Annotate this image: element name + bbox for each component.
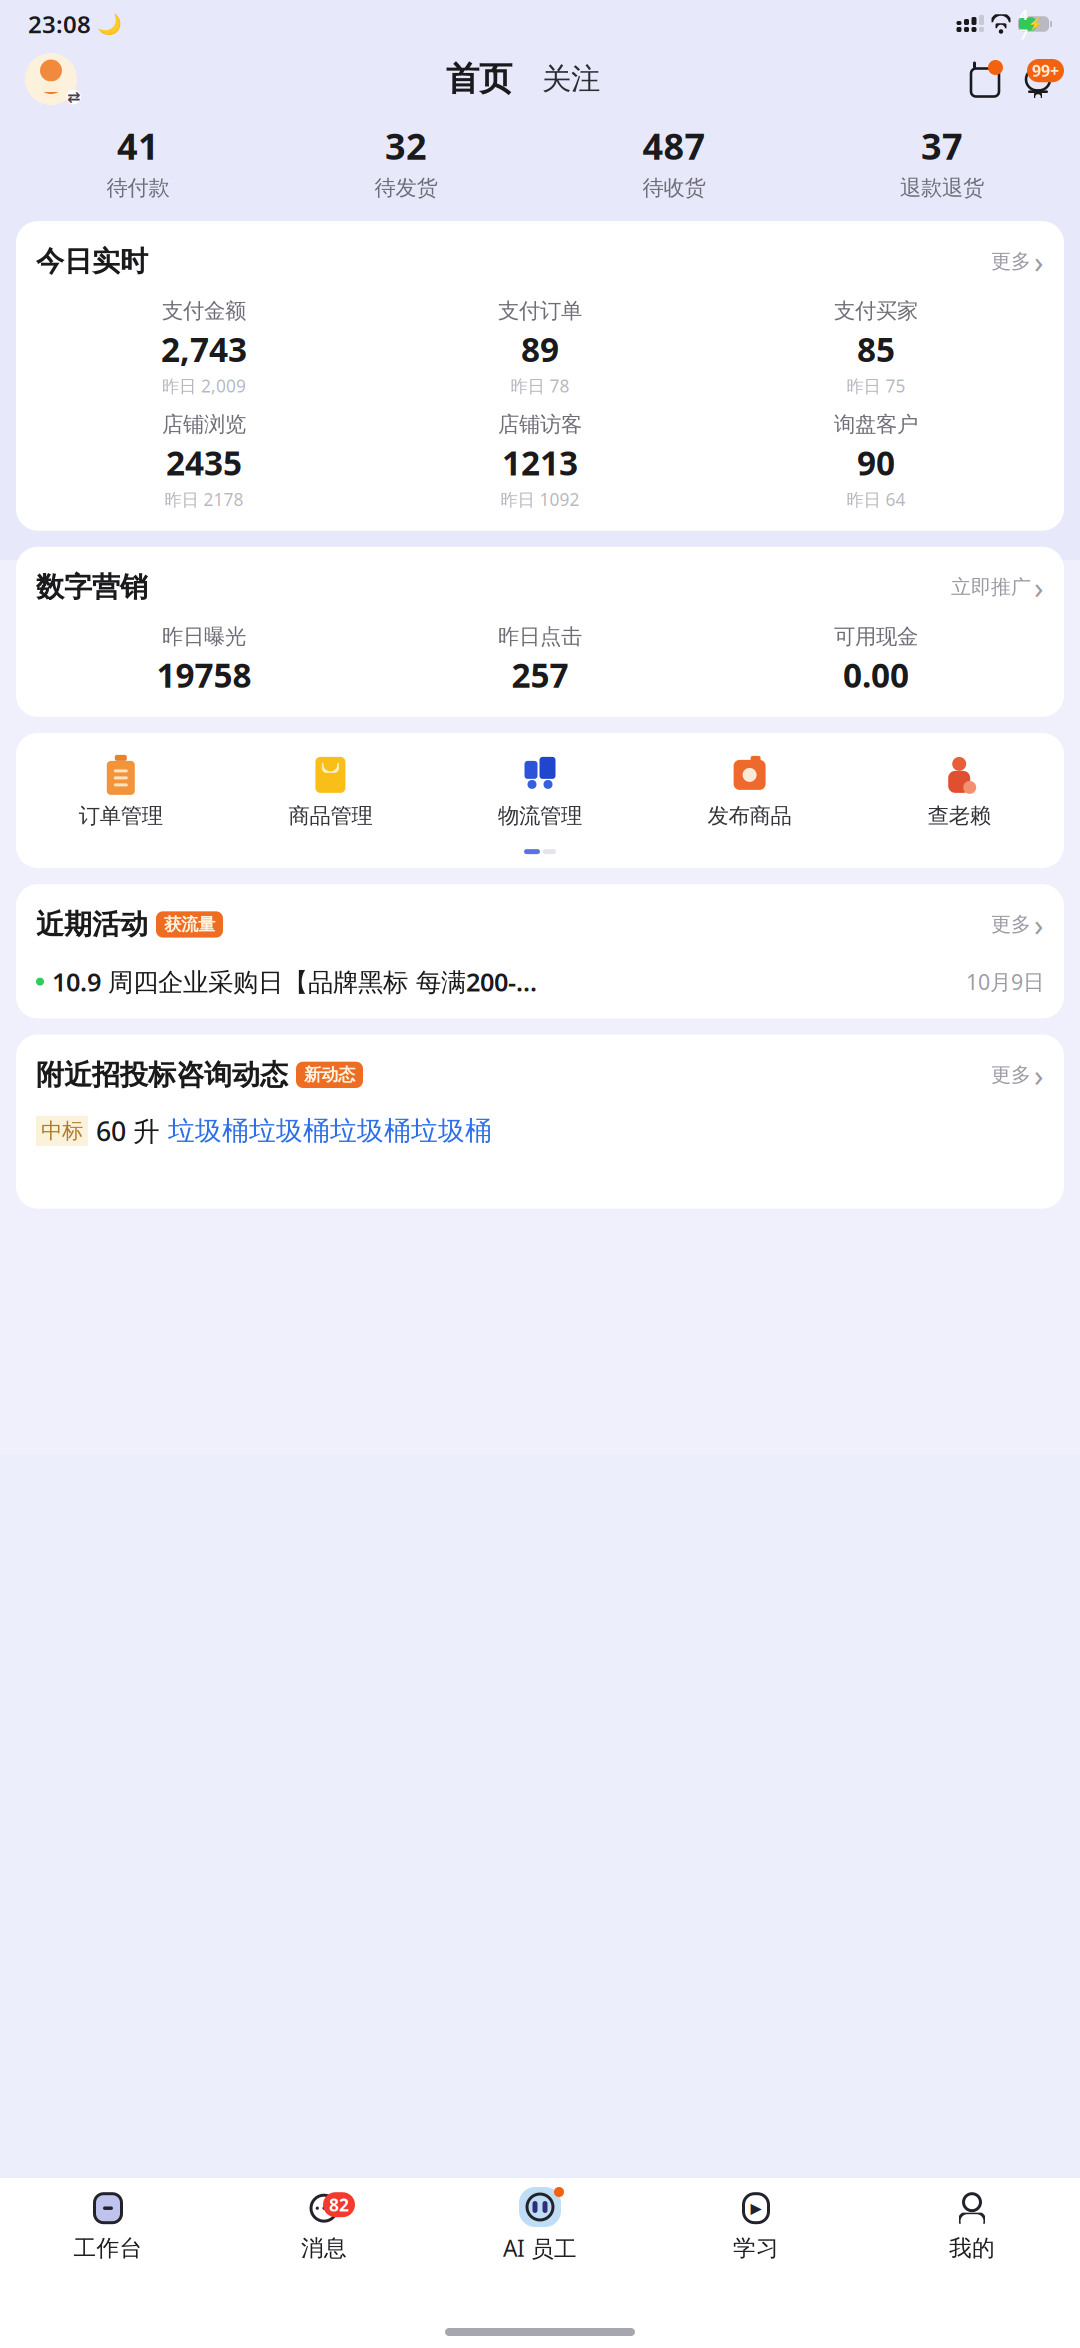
staticText: 关注 (542, 61, 600, 97)
staticText: 19758 (156, 653, 251, 697)
staticText: 10.9 周四企业采购日【品牌黑标 每满200-... (52, 965, 537, 998)
button[interactable]: 中标 (36, 1095, 1044, 1149)
staticText: 店铺访客 (498, 411, 582, 437)
staticText: 89 (521, 327, 559, 371)
staticText: 0.00 (843, 653, 909, 697)
staticText: 昨日 64 (846, 488, 905, 511)
staticText: 数字营销 (36, 570, 148, 604)
staticText: 2435 (166, 440, 242, 485)
button[interactable]: 我的 (864, 2179, 1080, 2262)
staticText: 2,743 (161, 327, 247, 371)
staticText: ▶ (750, 2200, 761, 2216)
button[interactable]: 立即推广 (951, 567, 1044, 607)
staticText: 37 (921, 122, 963, 170)
staticText: 昨日 75 (846, 374, 905, 397)
staticText: › (1034, 904, 1044, 945)
staticText: ⇄ (67, 88, 80, 106)
button[interactable]: 查老赖 (854, 755, 1064, 829)
staticText: 今日实时 (36, 244, 148, 279)
staticText: 85 (857, 327, 895, 371)
button[interactable]: Notifications (1004, 59, 1058, 99)
staticText: 近期活动 (36, 907, 148, 942)
button[interactable]: AI 员工 (432, 2178, 648, 2263)
staticText: 60 升 (96, 1113, 160, 1149)
button[interactable]: Calendar (966, 59, 1004, 99)
staticText: 32 (385, 122, 427, 170)
button[interactable]: 发布商品 (645, 755, 854, 829)
button[interactable]: 更多 (991, 904, 1044, 945)
staticText: 更多 (991, 1062, 1031, 1087)
button[interactable]: 商品管理 (226, 755, 435, 829)
staticText: ⚡ (1027, 17, 1042, 31)
staticText: 新动态 (304, 1064, 355, 1085)
staticText: 90 (857, 440, 895, 485)
staticText: 询盘客户 (834, 411, 918, 437)
button[interactable]: 关注 (512, 61, 600, 97)
staticText: › (1034, 241, 1044, 282)
button[interactable]: 更多 (991, 241, 1044, 282)
staticText: 我的 (949, 2234, 995, 2262)
button[interactable]: 首页 (446, 58, 512, 99)
staticText: 待付款 (106, 175, 169, 201)
staticText: 更多 (991, 249, 1031, 274)
staticText: 昨日点击 (498, 623, 582, 650)
staticText: 昨日 2,009 (162, 374, 246, 397)
staticText: 昨日 2178 (164, 488, 243, 511)
staticText: 47 (1019, 4, 1027, 43)
staticText: 支付金额 (162, 298, 246, 324)
button[interactable]: 更多 (991, 1054, 1044, 1095)
button[interactable]: 82 (216, 2179, 432, 2262)
staticText: AI 员工 (503, 2233, 577, 2263)
staticText: 学习 (733, 2234, 779, 2262)
staticText: 待发货 (374, 175, 437, 201)
staticText: 昨日 1092 (500, 488, 579, 511)
staticText: 查老赖 (928, 803, 991, 829)
staticText: 23:08 (28, 8, 91, 40)
staticText: 1213 (502, 440, 578, 485)
staticText: 待收货 (642, 175, 705, 201)
staticText: 发布商品 (708, 803, 792, 829)
staticText: 中标 (41, 1118, 83, 1144)
staticText: 获流量 (164, 914, 215, 935)
staticText: 支付订单 (498, 298, 582, 324)
button[interactable]: 32 (272, 116, 540, 207)
staticText: 商品管理 (288, 803, 372, 829)
staticText: 昨日曝光 (162, 623, 246, 650)
staticText: › (1034, 1054, 1044, 1095)
staticText: 首页 (446, 58, 512, 99)
staticText: 店铺浏览 (162, 411, 246, 437)
staticText: 更多 (991, 912, 1031, 937)
button[interactable]: 订单管理 (16, 755, 226, 829)
staticText: 工作台 (73, 2234, 142, 2262)
staticText: 可用现金 (834, 623, 918, 650)
staticText: 99+ (1032, 60, 1059, 81)
staticText: 10月9日 (966, 967, 1044, 996)
staticText: 消息 (301, 2234, 347, 2262)
staticText: 487 (642, 122, 705, 170)
button[interactable]: Account (22, 51, 80, 107)
staticText: 257 (511, 653, 568, 697)
staticText: 支付买家 (834, 298, 918, 324)
staticText: 退款退货 (900, 175, 984, 201)
staticText: 82 (329, 2193, 349, 2216)
staticText: 🌙 (97, 13, 122, 35)
staticText: 附近招投标咨询动态 (36, 1058, 288, 1092)
staticText: 垃圾桶垃圾桶垃圾桶垃圾桶 (168, 1114, 492, 1147)
staticText: › (1034, 567, 1044, 607)
staticText: 立即推广 (951, 575, 1031, 599)
button[interactable]: 41 (4, 116, 272, 207)
staticText: 订单管理 (79, 803, 163, 829)
staticText: 昨日 78 (510, 374, 569, 397)
button[interactable]: 487 (540, 116, 808, 207)
button[interactable]: 37 (808, 116, 1076, 207)
button[interactable]: ▶ (648, 2179, 864, 2262)
button[interactable]: 物流管理 (435, 755, 645, 829)
staticText: 物流管理 (498, 803, 582, 829)
staticText: 41 (117, 122, 159, 170)
button[interactable]: 工作台 (0, 2179, 216, 2262)
button[interactable]: 10.9 周四企业采购日【品牌黑标 每满200-... (36, 945, 1044, 998)
